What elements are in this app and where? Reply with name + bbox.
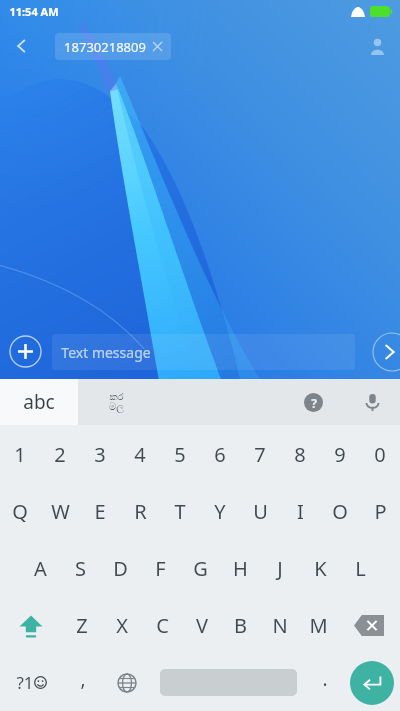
staticText: F: [155, 555, 166, 582]
button[interactable]: I: [280, 483, 320, 540]
button[interactable]: K: [300, 540, 340, 597]
button[interactable]: Help: [293, 382, 333, 422]
button[interactable]: U: [240, 483, 280, 540]
staticText: 1: [14, 441, 26, 468]
staticText: 4: [134, 441, 146, 468]
staticText: M: [309, 612, 328, 639]
button[interactable]: V: [182, 597, 221, 654]
staticText: N: [272, 612, 288, 639]
staticText: 3: [94, 441, 106, 468]
button[interactable]: Contacts: [354, 22, 400, 70]
staticText: කර: [109, 392, 124, 402]
staticText: D: [113, 555, 128, 582]
staticText: 6: [214, 441, 226, 468]
button[interactable]: L: [340, 540, 380, 597]
button[interactable]: Shift: [0, 597, 62, 654]
staticText: O: [332, 498, 348, 525]
button[interactable]: H: [220, 540, 260, 597]
button[interactable]: 2: [40, 425, 80, 483]
staticText: V: [196, 612, 208, 639]
button[interactable]: ,: [62, 654, 104, 711]
staticText: 5: [174, 441, 186, 468]
staticText: ,: [80, 666, 86, 692]
staticText: W: [51, 498, 70, 525]
staticText: R: [134, 498, 147, 525]
button[interactable]: Delete: [338, 597, 400, 654]
staticText: L: [355, 555, 366, 582]
button[interactable]: Enter: [344, 654, 400, 711]
button[interactable]: W: [40, 483, 80, 540]
staticText: C: [156, 612, 169, 639]
button[interactable]: Back: [0, 22, 44, 70]
staticText: U: [253, 498, 268, 525]
button[interactable]: N: [260, 597, 299, 654]
staticText: G: [193, 555, 208, 582]
staticText: 18730218809: [64, 38, 146, 56]
staticText: 11:54 AM: [9, 4, 59, 19]
staticText: P: [374, 498, 387, 525]
button[interactable]: 9: [320, 425, 360, 483]
button[interactable]: M: [299, 597, 338, 654]
staticText: 7: [254, 441, 266, 468]
staticText: K: [314, 555, 327, 582]
staticText: මල: [109, 402, 124, 412]
staticText: Text message: [61, 343, 151, 362]
button[interactable]: Send: [372, 332, 400, 372]
staticText: B: [234, 612, 247, 639]
button[interactable]: S: [60, 540, 100, 597]
button[interactable]: Y: [200, 483, 240, 540]
button[interactable]: E: [80, 483, 120, 540]
staticText: Y: [214, 498, 226, 525]
staticText: 0: [374, 441, 386, 468]
button[interactable]: 3: [80, 425, 120, 483]
staticText: abc: [23, 389, 55, 415]
button[interactable]: Voice input: [352, 382, 392, 422]
staticText: J: [277, 555, 283, 582]
button[interactable]: abc: [0, 379, 78, 425]
button[interactable]: C: [142, 597, 182, 654]
button[interactable]: Change language: [104, 654, 150, 711]
button[interactable]: X: [102, 597, 142, 654]
button[interactable]: 5: [160, 425, 200, 483]
button[interactable]: O: [320, 483, 360, 540]
staticText: H: [233, 555, 248, 582]
button[interactable]: 8: [280, 425, 320, 483]
staticText: E: [94, 498, 106, 525]
staticText: S: [75, 555, 86, 582]
button[interactable]: .: [306, 654, 344, 711]
button[interactable]: 4: [120, 425, 160, 483]
button[interactable]: F: [140, 540, 180, 597]
button[interactable]: R: [120, 483, 160, 540]
staticText: Q: [12, 498, 28, 525]
button[interactable]: Text message: [52, 334, 355, 370]
staticText: Z: [76, 612, 88, 639]
button[interactable]: Q: [0, 483, 40, 540]
button[interactable]: G: [180, 540, 220, 597]
staticText: ?1: [16, 671, 34, 694]
button[interactable]: D: [100, 540, 140, 597]
staticText: .: [322, 666, 328, 692]
button[interactable]: B: [221, 597, 260, 654]
button[interactable]: P: [360, 483, 400, 540]
button[interactable]: 7: [240, 425, 280, 483]
staticText: 8: [294, 441, 306, 468]
button[interactable]: A: [20, 540, 60, 597]
button[interactable]: 1: [0, 425, 40, 483]
staticText: T: [174, 498, 186, 525]
button[interactable]: Add attachment: [9, 335, 42, 368]
button[interactable]: 0: [360, 425, 400, 483]
staticText: I: [297, 498, 304, 525]
staticText: X: [116, 612, 128, 639]
button[interactable]: T: [160, 483, 200, 540]
staticText: A: [34, 555, 47, 582]
staticText: ?: [311, 395, 317, 411]
staticText: 9: [334, 441, 346, 468]
staticText: 2: [54, 441, 66, 468]
button[interactable]: 6: [200, 425, 240, 483]
button[interactable]: Z: [62, 597, 102, 654]
button[interactable]: 18730218809: [55, 33, 171, 60]
button[interactable]: කර: [78, 379, 154, 425]
button[interactable]: J: [260, 540, 300, 597]
button[interactable]: ?1: [0, 654, 62, 711]
